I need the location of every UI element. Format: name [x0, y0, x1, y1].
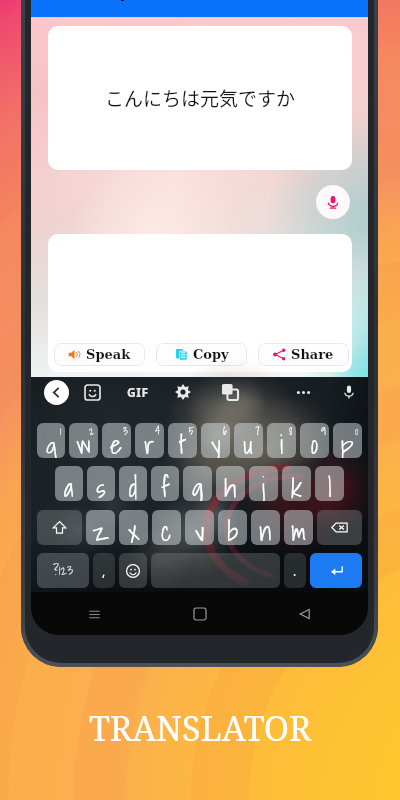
staticText: m [291, 510, 307, 545]
button[interactable]: Translate [222, 384, 238, 400]
staticText: TRANSLATOR [89, 705, 312, 751]
staticText: 4 [155, 423, 161, 439]
staticText: , [102, 563, 106, 579]
button[interactable]: . [284, 553, 306, 588]
button[interactable]: j [249, 466, 278, 501]
staticText: r [144, 423, 155, 458]
button[interactable]: Enter [310, 553, 362, 588]
staticText: w [76, 423, 91, 458]
staticText: . [293, 563, 297, 579]
button[interactable]: d [119, 466, 147, 501]
button[interactable]: Microphone [341, 384, 357, 400]
staticText: c [161, 510, 172, 545]
staticText: n [259, 510, 272, 545]
staticText: l [328, 466, 332, 501]
button[interactable]: v [185, 510, 214, 545]
staticText: u [243, 423, 254, 458]
staticText: 9 [321, 423, 326, 439]
button[interactable]: z [86, 510, 115, 545]
button[interactable]: Home [189, 603, 211, 625]
button[interactable]: r [135, 423, 164, 458]
button[interactable]: t [168, 423, 197, 458]
staticText: j [262, 466, 265, 501]
button[interactable]: m [284, 510, 313, 545]
button[interactable]: Emoji [119, 553, 147, 588]
button[interactable]: g [183, 466, 212, 501]
button[interactable]: x [119, 510, 148, 545]
staticText: 5 [189, 423, 194, 439]
button[interactable]: Back [294, 603, 316, 625]
button[interactable]: q [37, 423, 65, 458]
button[interactable]: h [216, 466, 245, 501]
staticText: p [341, 423, 354, 458]
staticText: k [291, 466, 303, 501]
button[interactable]: Backspace [317, 510, 362, 545]
button[interactable]: s [87, 466, 115, 501]
staticText: Speak [86, 347, 131, 362]
staticText: v [195, 510, 205, 545]
button[interactable]: u [234, 423, 263, 458]
staticText: o [311, 423, 318, 458]
button[interactable]: f [151, 466, 179, 501]
staticText: z [92, 510, 109, 545]
button[interactable]: ?123 [37, 553, 89, 588]
button[interactable]: y [201, 423, 230, 458]
button[interactable]: Share [258, 343, 349, 366]
staticText: Share [291, 347, 334, 362]
button[interactable]: Settings [175, 384, 191, 400]
button[interactable]: l [315, 466, 344, 501]
button[interactable]: More [295, 384, 312, 401]
button[interactable]: Speak [54, 343, 145, 366]
button[interactable]: w [69, 423, 98, 458]
staticText: x [128, 510, 140, 545]
staticText: f [161, 466, 170, 501]
button[interactable]: Recents [83, 603, 105, 625]
button[interactable]: , [93, 553, 115, 588]
staticText: e [110, 423, 123, 458]
staticText: 1 [60, 423, 62, 439]
button[interactable]: Stickers [85, 385, 100, 400]
staticText: g [192, 466, 204, 501]
button[interactable]: c [152, 510, 181, 545]
button[interactable]: Back [44, 380, 69, 405]
staticText: GIF [127, 384, 149, 400]
staticText: 3 [123, 423, 128, 439]
staticText: 7 [255, 423, 260, 439]
staticText: i [280, 423, 284, 458]
button[interactable]: Voice input [316, 185, 350, 219]
button[interactable]: i [267, 423, 296, 458]
staticText: こんにちは元気ですか [105, 84, 296, 112]
staticText: ?123 [53, 560, 73, 581]
button[interactable]: o [300, 423, 329, 458]
staticText: 8 [289, 423, 293, 439]
staticText: a [64, 466, 74, 501]
staticText: y [211, 423, 221, 458]
staticText: q [46, 423, 57, 458]
button[interactable]: p [333, 423, 362, 458]
staticText: Copy [193, 347, 229, 362]
button[interactable]: b [218, 510, 247, 545]
staticText: 6 [223, 423, 227, 439]
staticText: b [227, 510, 239, 545]
button[interactable]: Copy [156, 343, 247, 366]
staticText: 0 [355, 423, 359, 439]
staticText: s [96, 466, 106, 501]
staticText: 2 [89, 423, 95, 439]
staticText: d [129, 466, 138, 501]
button[interactable]: n [251, 510, 280, 545]
staticText: t [179, 423, 186, 458]
button[interactable]: Shift [37, 510, 82, 545]
staticText: h [224, 466, 237, 501]
button[interactable]: a [55, 466, 83, 501]
button[interactable]: k [282, 466, 311, 501]
button[interactable]: e [102, 423, 131, 458]
button[interactable]: Space [151, 553, 280, 588]
button[interactable]: こんにちは元気ですか [48, 26, 352, 170]
